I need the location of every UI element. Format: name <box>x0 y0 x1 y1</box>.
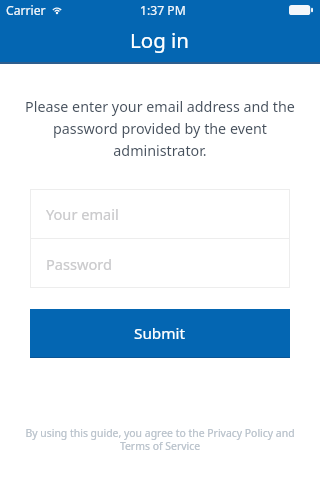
staticText: Log in <box>130 26 190 54</box>
staticText: Your email <box>46 204 119 224</box>
button[interactable]: By using this guide, you agree to the Pr… <box>0 426 320 453</box>
other: Battery full <box>289 5 313 15</box>
button[interactable]: Submit <box>30 309 290 358</box>
other: Wi-Fi signal <box>51 5 63 15</box>
staticText: By using this guide, you agree to the Pr… <box>20 426 300 453</box>
button[interactable]: Your email <box>30 189 290 238</box>
button[interactable]: Password <box>30 239 290 288</box>
staticText: Submit <box>134 323 186 344</box>
staticText: Please enter your email address and the … <box>20 97 300 160</box>
staticText: Password <box>46 254 113 274</box>
staticText: 1:37 PM <box>140 2 186 19</box>
staticText: Carrier <box>6 2 46 19</box>
